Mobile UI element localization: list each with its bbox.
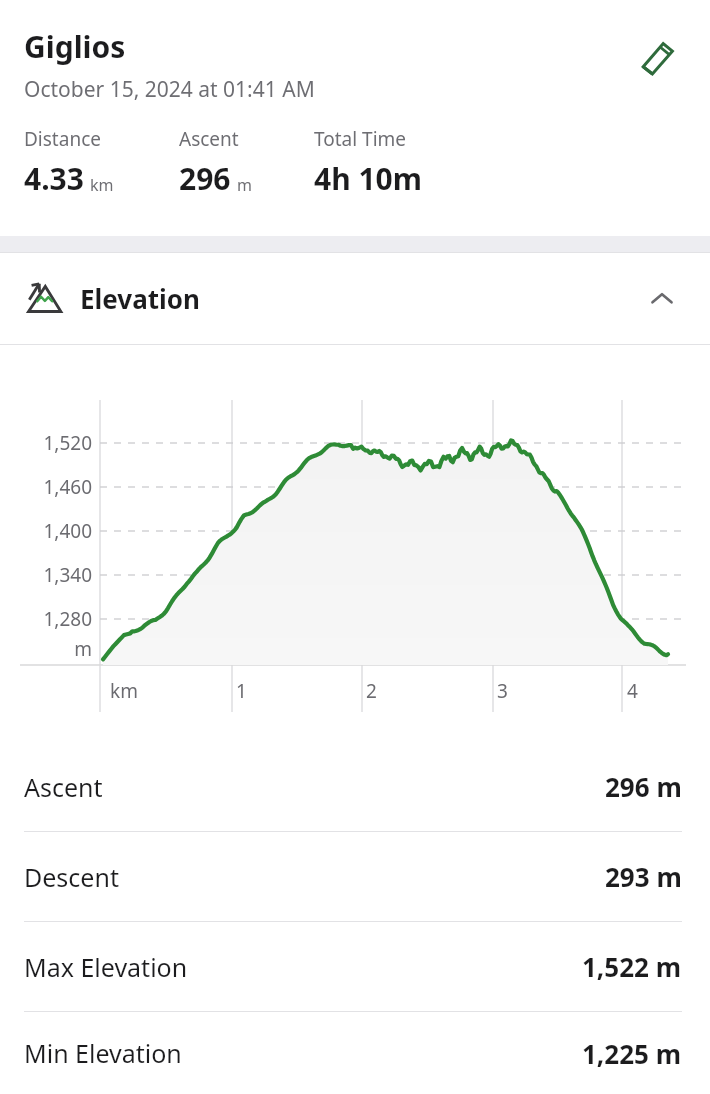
- button[interactable]: Edit: [634, 34, 682, 82]
- staticText: 1,340: [0, 562, 92, 588]
- staticText: 1,520: [0, 430, 92, 456]
- staticText: km: [90, 174, 114, 196]
- staticText: 1,280: [0, 606, 92, 632]
- staticText: October 15, 2024 at 01:41 AM: [24, 75, 315, 104]
- staticText: 3: [497, 678, 508, 704]
- staticText: Distance: [24, 126, 101, 152]
- button[interactable]: Ascent: [0, 742, 710, 831]
- staticText: 1: [236, 678, 247, 704]
- staticText: 4h 10m: [314, 158, 423, 199]
- staticText: 1,460: [0, 474, 92, 500]
- staticText: 4.33: [24, 158, 84, 199]
- staticText: Giglios: [24, 26, 126, 67]
- staticText: 1,522 m: [582, 949, 682, 984]
- staticText: Elevation: [80, 281, 200, 316]
- staticText: 296: [179, 158, 231, 199]
- staticText: km: [110, 678, 138, 704]
- staticText: Min Elevation: [24, 1036, 182, 1070]
- staticText: Max Elevation: [24, 950, 188, 984]
- staticText: Descent: [24, 860, 119, 894]
- button[interactable]: Collapse section: [642, 279, 682, 319]
- staticText: Ascent: [24, 770, 103, 804]
- staticText: m: [237, 174, 252, 196]
- staticText: 1,400: [0, 518, 92, 544]
- staticText: 4: [627, 678, 638, 704]
- staticText: 1,225 m: [582, 1036, 682, 1071]
- staticText: 296 m: [605, 769, 682, 804]
- staticText: m: [0, 636, 92, 662]
- button[interactable]: Min Elevation: [0, 1012, 710, 1094]
- staticText: Ascent: [179, 126, 239, 152]
- button[interactable]: Max Elevation: [0, 922, 710, 1011]
- staticText: 2: [366, 678, 377, 704]
- button[interactable]: Elevation: [0, 253, 710, 344]
- staticText: 293 m: [605, 859, 682, 894]
- staticText: Total Time: [314, 126, 407, 152]
- button[interactable]: Descent: [0, 832, 710, 921]
